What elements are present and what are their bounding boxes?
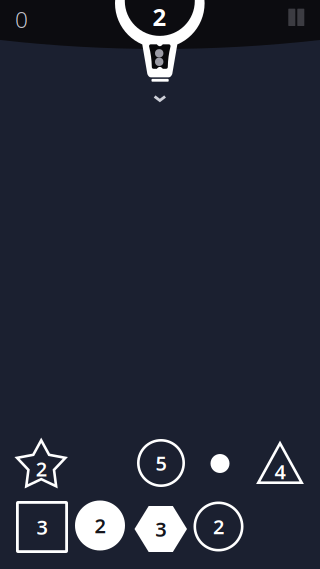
button[interactable]: Blank token xyxy=(210,454,229,473)
staticText: 2 xyxy=(213,513,224,540)
button[interactable]: Token 5 xyxy=(137,439,185,487)
staticText: 2 xyxy=(94,512,105,539)
button[interactable]: Token 2 xyxy=(193,501,243,551)
staticText: 3 xyxy=(155,516,166,542)
button[interactable]: Token 3 xyxy=(134,506,187,552)
staticText: 0 xyxy=(15,4,28,34)
button[interactable]: Token 4 xyxy=(257,442,303,484)
staticText: 2 xyxy=(153,1,167,33)
button[interactable]: Pause xyxy=(276,0,316,34)
staticText: 4 xyxy=(274,458,285,485)
button[interactable]: Token 2 xyxy=(75,500,125,550)
button[interactable]: 0 xyxy=(2,2,40,36)
staticText: 2 xyxy=(36,455,47,482)
staticText: 3 xyxy=(36,514,47,540)
button[interactable]: Token 3 xyxy=(16,501,68,553)
staticText: 5 xyxy=(155,450,166,476)
button[interactable]: Token 2 xyxy=(14,440,68,492)
